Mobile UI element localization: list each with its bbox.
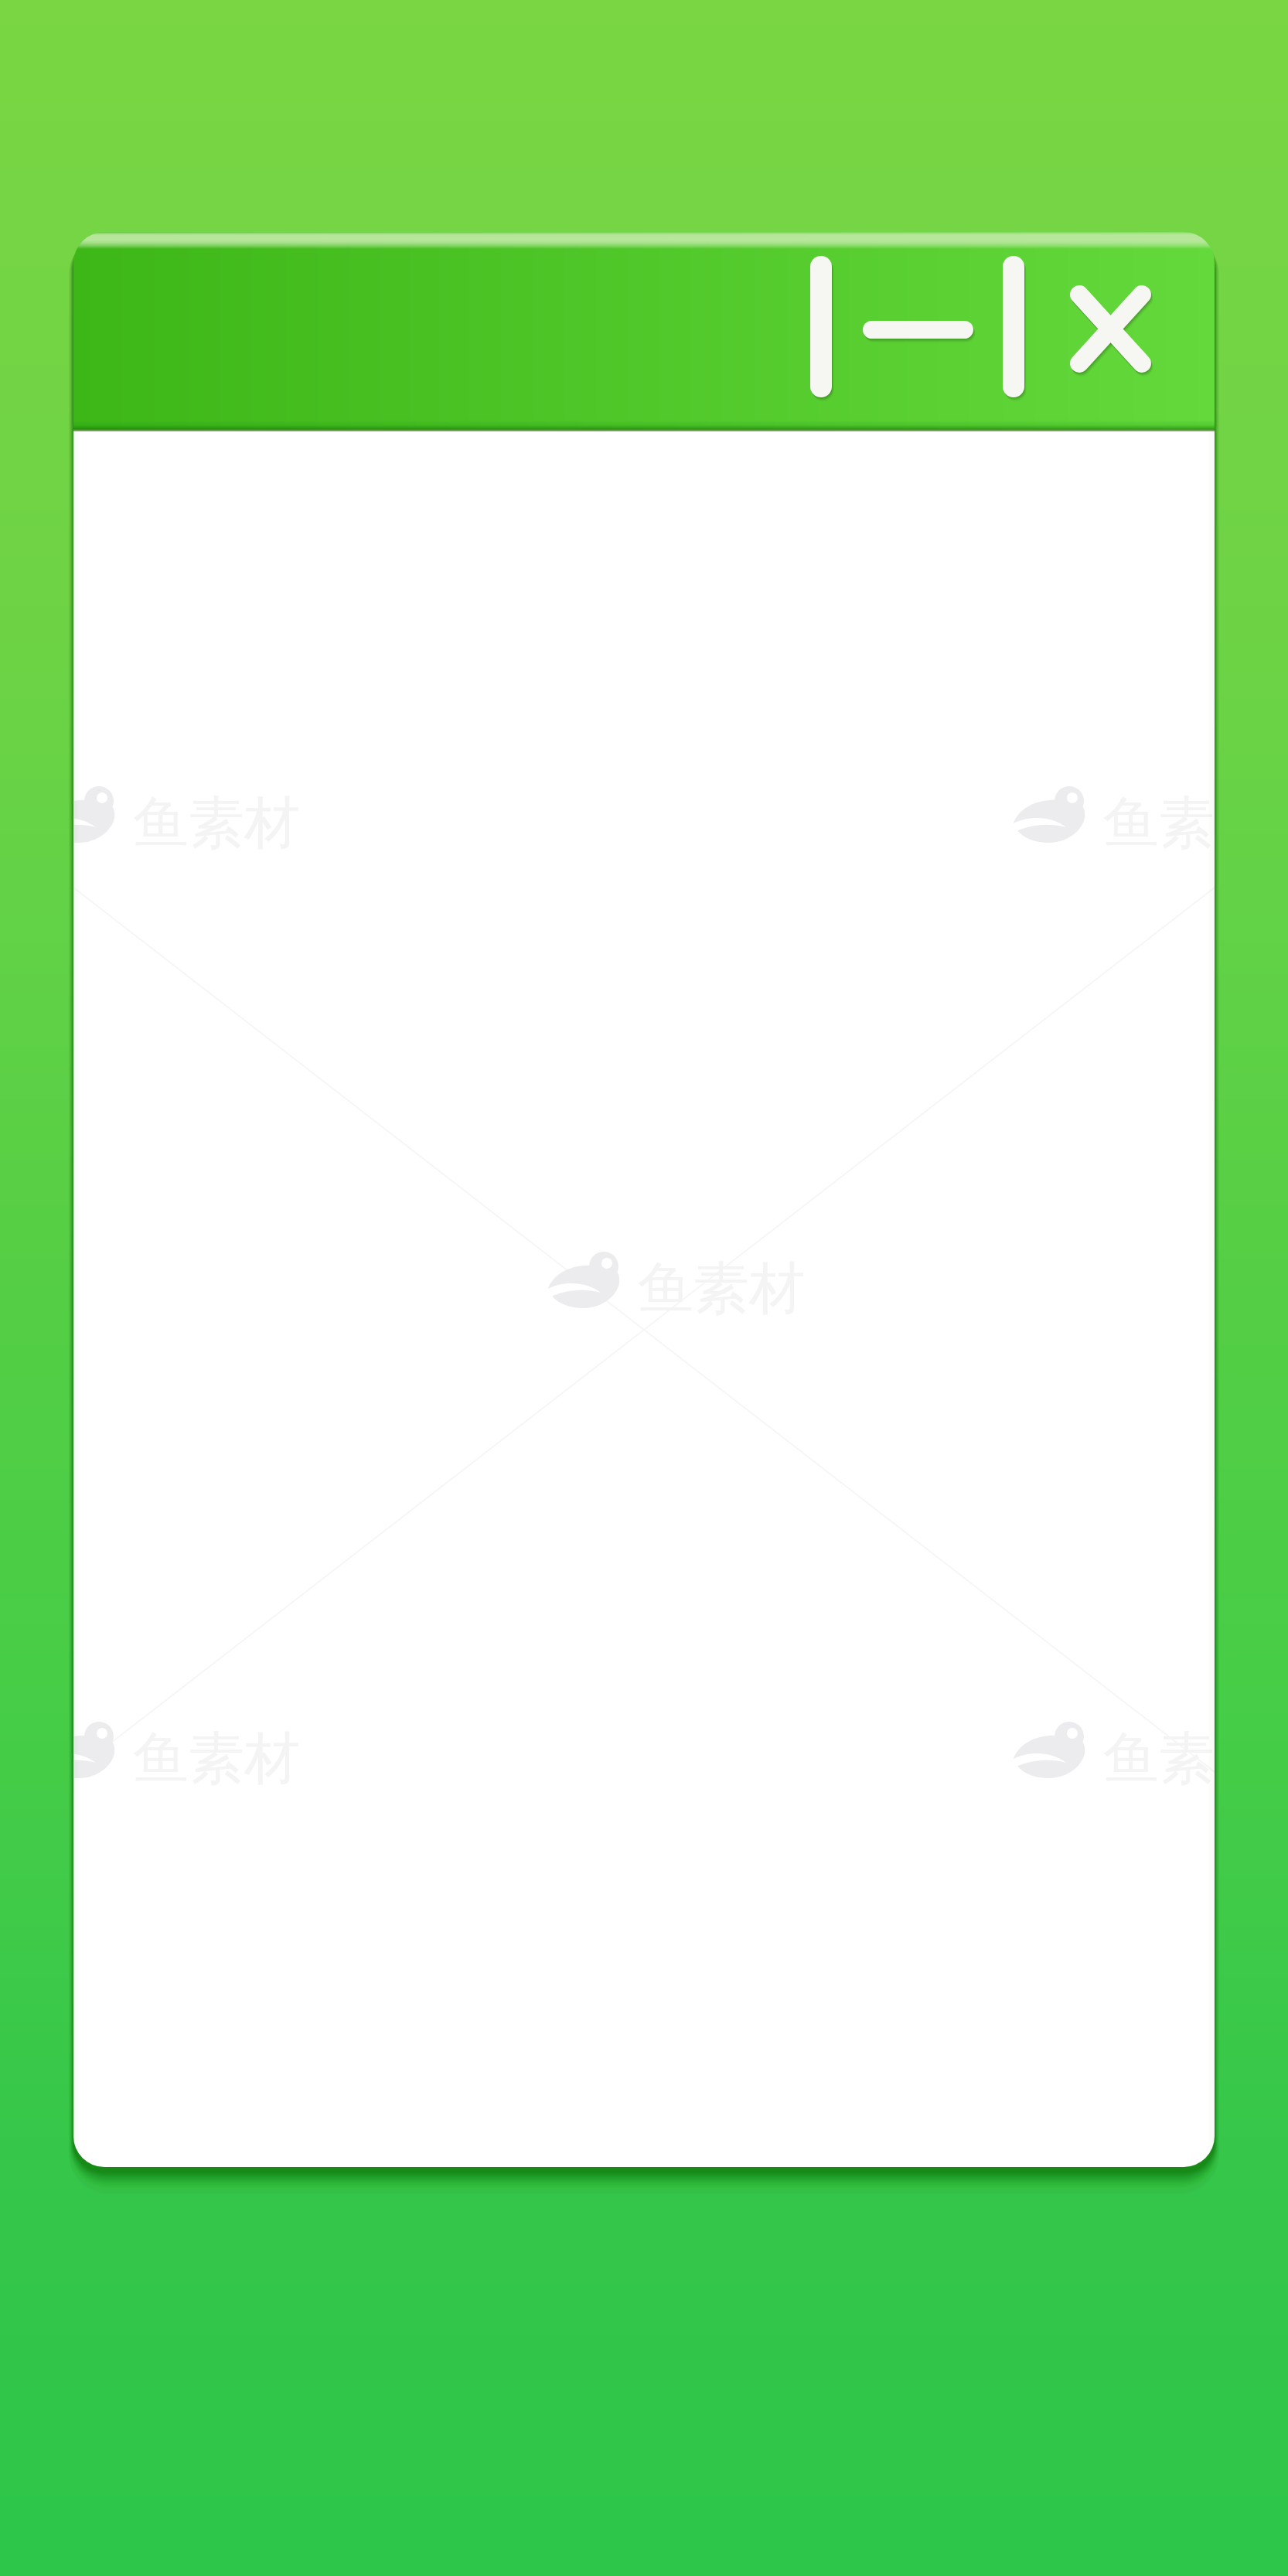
staticText: 鱼素材	[638, 1254, 805, 1324]
button[interactable]: Close	[1055, 270, 1167, 388]
staticText: 鱼素材	[1103, 789, 1215, 859]
staticText: 鱼素材	[1103, 1724, 1215, 1794]
staticText: 鱼素材	[133, 789, 300, 859]
staticText: 鱼素材	[133, 1724, 300, 1794]
button[interactable]: Minimize	[800, 240, 1040, 424]
